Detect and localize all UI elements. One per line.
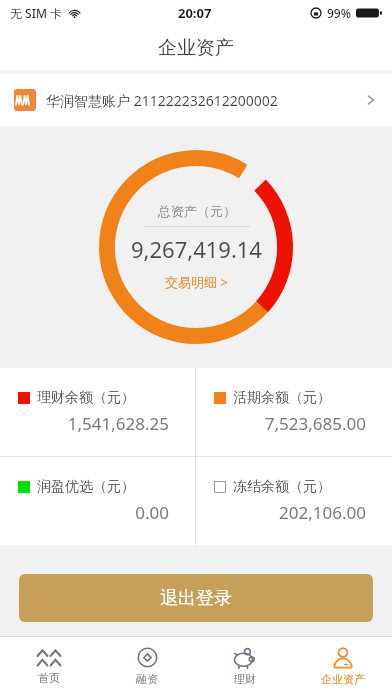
staticText: 202,106.00 — [214, 501, 366, 524]
button[interactable]: 交易明细 > — [165, 273, 228, 291]
staticText: 企业资产 — [321, 672, 365, 686]
staticText: 融资 — [136, 672, 158, 686]
staticText: 企业资产 — [158, 36, 234, 60]
staticText: 润盈优选（元） — [37, 478, 135, 496]
staticText: 总资产（元） — [158, 203, 236, 219]
staticText: 20:07 — [178, 4, 212, 22]
staticText: 华润智慧账户 211222232612200002 — [46, 91, 278, 110]
button[interactable]: 冻结余额（元） — [196, 457, 392, 545]
button[interactable]: 华润智慧账户 211222232612200002 — [0, 74, 392, 126]
staticText: 7,523,685.00 — [214, 412, 366, 435]
button[interactable]: 融资 — [98, 637, 196, 696]
button[interactable]: 理财 — [196, 637, 294, 696]
button[interactable]: 企业资产 — [294, 637, 392, 696]
staticText: 首页 — [38, 671, 60, 685]
staticText: 无 SIM 卡 — [10, 5, 63, 21]
button[interactable]: 润盈优选（元） — [0, 457, 195, 545]
staticText: 1,541,628.25 — [18, 412, 169, 435]
button[interactable]: 理财余额（元） — [0, 368, 195, 456]
button[interactable]: 退出登录 — [19, 574, 373, 622]
staticText: 0.00 — [18, 501, 169, 524]
button[interactable]: 活期余额（元） — [196, 368, 392, 456]
button[interactable]: 首页 — [0, 637, 98, 696]
staticText: 99% — [327, 5, 351, 21]
staticText: 活期余额（元） — [233, 389, 331, 407]
staticText: 9,267,419.14 — [131, 234, 262, 264]
staticText: 交易明细 > — [165, 273, 228, 291]
staticText: 理财 — [234, 672, 256, 686]
staticText: 退出登录 — [160, 587, 232, 610]
staticText: 理财余额（元） — [37, 389, 135, 407]
staticText: 冻结余额（元） — [233, 478, 331, 496]
